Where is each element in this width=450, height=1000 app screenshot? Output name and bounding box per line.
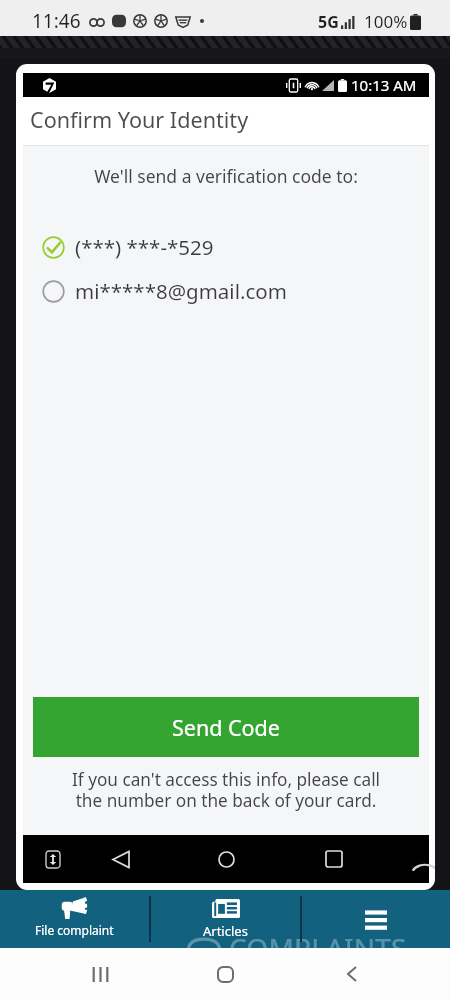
button[interactable]: Send Code — [33, 697, 419, 757]
staticText: 10:13 AM — [351, 75, 417, 95]
staticText: 5G — [318, 11, 339, 33]
button[interactable]: File complaint — [0, 890, 149, 948]
staticText: mi*****8@gmail.com — [75, 277, 287, 305]
button[interactable]: Home — [205, 954, 245, 994]
staticText: We'll send a verification code to: — [23, 164, 429, 188]
button[interactable]: Back — [332, 954, 372, 994]
button[interactable]: Articles — [150, 890, 300, 948]
staticText: 11:46 — [32, 8, 81, 34]
staticText: (***) ***-*529 — [75, 233, 214, 261]
button[interactable]: Keyboard switch — [35, 841, 71, 877]
staticText: File complaint — [35, 922, 114, 938]
staticText: COMPLAINTS — [229, 929, 407, 967]
staticText: Confirm Your Identity — [30, 105, 249, 134]
staticText: 100% — [364, 10, 408, 33]
button[interactable]: (***) ***-*529 — [42, 226, 415, 268]
button[interactable]: Recents — [80, 954, 120, 994]
other: App logo — [42, 78, 57, 93]
button[interactable]: Home — [207, 840, 245, 878]
staticText: If you can't access this info, please ca… — [23, 768, 429, 812]
button[interactable]: mi*****8@gmail.com — [42, 270, 415, 312]
button[interactable]: Recents — [315, 840, 353, 878]
staticText: Send Code — [172, 713, 280, 742]
button[interactable]: Scroll to top — [412, 876, 435, 883]
button[interactable]: Back — [102, 840, 140, 878]
button[interactable]: Menu — [301, 890, 450, 948]
staticText: Articles — [203, 922, 248, 940]
